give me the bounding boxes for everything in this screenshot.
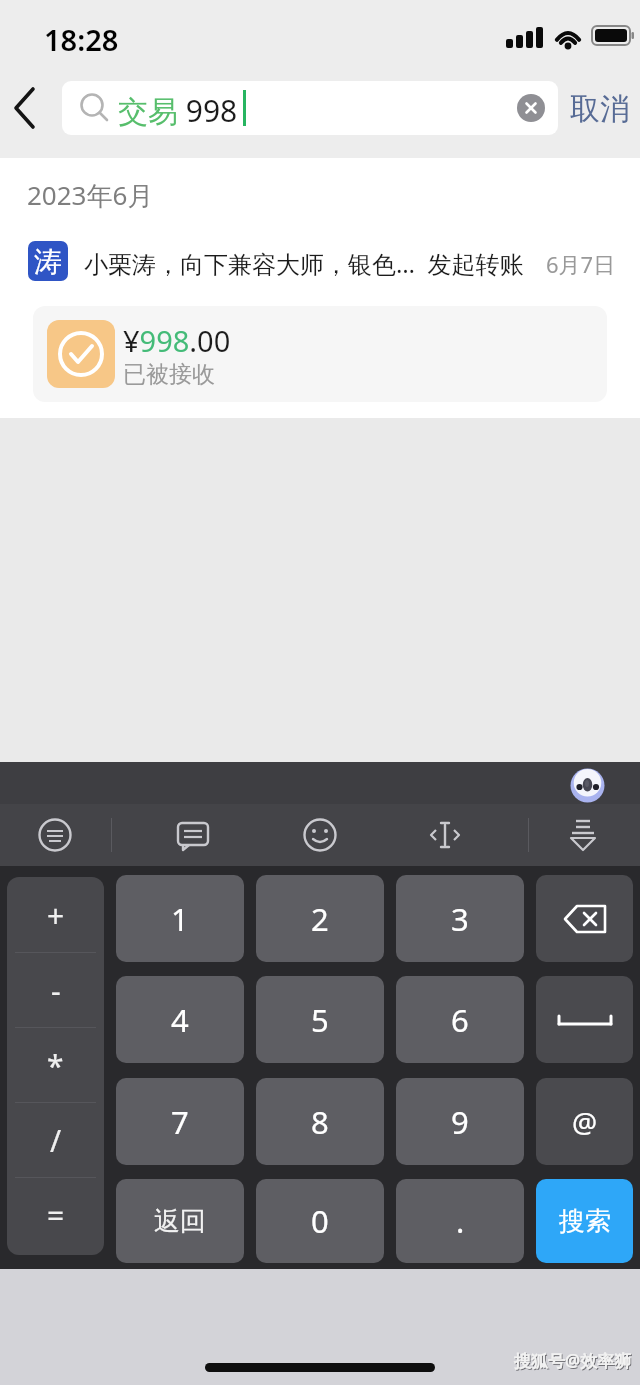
staticText: 6月7日	[546, 249, 616, 279]
button[interactable]: 6	[396, 976, 524, 1063]
staticText: *	[47, 1045, 64, 1086]
button[interactable]: @	[536, 1078, 633, 1165]
staticText: 取消	[570, 90, 630, 128]
button[interactable]: 7	[116, 1078, 244, 1165]
button[interactable]: 2	[256, 875, 384, 962]
staticText: 5	[311, 999, 329, 1041]
staticText: 已被接收	[123, 360, 215, 389]
staticText: 8	[311, 1101, 329, 1143]
staticText: 搜狐号@效率狮	[514, 1349, 632, 1372]
staticText: 交易 998	[118, 90, 238, 131]
button[interactable]	[536, 875, 633, 962]
staticText: 7	[171, 1101, 189, 1143]
staticText: 6	[451, 999, 469, 1041]
button[interactable]	[536, 976, 633, 1063]
staticText: 9	[451, 1101, 469, 1143]
button[interactable]: +	[7, 877, 104, 953]
button[interactable]: ¥998.00	[33, 306, 607, 402]
staticText: 18:28	[44, 20, 119, 59]
staticText: 搜狐号@效率狮	[515, 1350, 633, 1373]
button[interactable]: 取消	[570, 90, 630, 128]
button[interactable]: 交易 998	[62, 81, 558, 135]
staticText: /	[50, 1120, 62, 1161]
button[interactable]: 4	[116, 976, 244, 1063]
button[interactable]: /	[7, 1102, 104, 1178]
button[interactable]	[427, 817, 463, 853]
staticText: 小栗涛，向下兼容大师，银色… 发起转账	[84, 247, 524, 280]
button[interactable]	[565, 817, 601, 853]
button[interactable]: .	[396, 1179, 524, 1263]
staticText: 搜索	[559, 1205, 611, 1238]
button[interactable]	[570, 768, 605, 803]
staticText: 2	[311, 898, 329, 940]
staticText: @	[572, 1103, 598, 1141]
staticText: 3	[451, 898, 469, 940]
staticText: ¥998.00	[123, 321, 231, 360]
staticText: 涛	[34, 244, 62, 279]
button[interactable]: 3	[396, 875, 524, 962]
staticText: +	[47, 895, 65, 936]
staticText: .	[456, 1200, 465, 1242]
button[interactable]: 0	[256, 1179, 384, 1263]
staticText: 1	[171, 898, 189, 940]
staticText: -	[51, 970, 61, 1011]
button[interactable]	[6, 86, 46, 130]
button[interactable]: -	[7, 952, 104, 1028]
button[interactable]: 涛	[0, 231, 640, 291]
button[interactable]: 搜索	[536, 1179, 633, 1263]
button[interactable]: 5	[256, 976, 384, 1063]
staticText: 0	[311, 1200, 329, 1242]
button[interactable]: =	[7, 1177, 104, 1253]
button[interactable]: *	[7, 1027, 104, 1103]
staticText: 2023年6月	[27, 177, 154, 213]
button[interactable]	[302, 817, 338, 853]
button[interactable]: 1	[116, 875, 244, 962]
button[interactable]	[517, 94, 545, 122]
staticText: =	[47, 1195, 65, 1236]
button[interactable]	[37, 817, 73, 853]
button[interactable]: 9	[396, 1078, 524, 1165]
button[interactable]: 8	[256, 1078, 384, 1165]
button[interactable]: 返回	[116, 1179, 244, 1263]
staticText: 4	[171, 999, 189, 1041]
button[interactable]	[175, 817, 211, 853]
staticText: 返回	[154, 1205, 206, 1238]
